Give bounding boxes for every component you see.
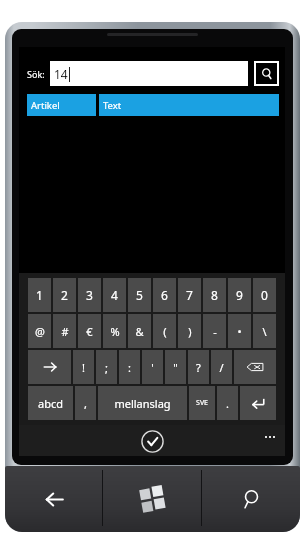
staticText: 7 bbox=[186, 287, 193, 303]
staticText: 1 bbox=[36, 287, 43, 303]
staticText: \ bbox=[262, 324, 267, 339]
staticText: abcd bbox=[38, 396, 63, 411]
button[interactable]: 3 bbox=[78, 278, 101, 312]
button[interactable]: " bbox=[165, 350, 186, 384]
button[interactable]: Backspace bbox=[234, 350, 276, 384]
staticText: ; bbox=[105, 360, 108, 375]
button[interactable]: 7 bbox=[178, 278, 201, 312]
button[interactable]: ? bbox=[188, 350, 209, 384]
staticText: 2 bbox=[61, 287, 68, 303]
staticText: & bbox=[135, 324, 144, 339]
staticText: 9 bbox=[236, 287, 243, 303]
button[interactable]: - bbox=[203, 314, 226, 348]
button[interactable]: Confirm bbox=[138, 427, 166, 455]
staticText: 6 bbox=[161, 287, 168, 303]
button[interactable]: • bbox=[228, 314, 251, 348]
staticText: Text bbox=[103, 99, 122, 112]
button[interactable]: 4 bbox=[103, 278, 126, 312]
staticText: 5 bbox=[136, 287, 143, 303]
button[interactable]: / bbox=[211, 350, 232, 384]
button[interactable]: ! bbox=[73, 350, 94, 384]
button[interactable]: ) bbox=[178, 314, 201, 348]
button[interactable]: ; bbox=[96, 350, 117, 384]
button[interactable]: ' bbox=[142, 350, 163, 384]
staticText: , bbox=[84, 396, 87, 411]
button[interactable]: abcd bbox=[28, 386, 73, 420]
staticText: Artikel bbox=[31, 99, 60, 112]
staticText: ' bbox=[151, 360, 154, 375]
button[interactable]: 8 bbox=[203, 278, 226, 312]
button[interactable]: Artikel bbox=[27, 94, 96, 116]
button[interactable]: , bbox=[75, 386, 96, 420]
button[interactable]: Text bbox=[99, 94, 279, 116]
button[interactable]: Start bbox=[103, 466, 201, 532]
staticText: ! bbox=[82, 360, 85, 375]
staticText: • bbox=[237, 324, 242, 339]
staticText: % bbox=[110, 324, 120, 339]
button[interactable]: 5 bbox=[128, 278, 151, 312]
staticText: 14 bbox=[54, 66, 68, 82]
staticText: . bbox=[226, 396, 229, 411]
button[interactable]: 14 bbox=[50, 61, 248, 86]
button[interactable]: mellanslag bbox=[98, 386, 187, 420]
button[interactable]: Search bbox=[254, 61, 279, 86]
button[interactable]: & bbox=[128, 314, 151, 348]
button[interactable]: 2 bbox=[53, 278, 76, 312]
staticText: 0 bbox=[261, 287, 268, 303]
button[interactable]: . bbox=[217, 386, 238, 420]
button[interactable]: \ bbox=[253, 314, 276, 348]
button[interactable]: SVE bbox=[189, 386, 215, 420]
button[interactable]: @ bbox=[28, 314, 51, 348]
staticText: Sök: bbox=[27, 68, 45, 80]
button[interactable]: Tab bbox=[28, 350, 71, 384]
button[interactable]: 0 bbox=[253, 278, 276, 312]
staticText: ( bbox=[163, 324, 167, 339]
button[interactable]: € bbox=[78, 314, 101, 348]
button[interactable]: 9 bbox=[228, 278, 251, 312]
staticText: 4 bbox=[111, 287, 118, 303]
staticText: - bbox=[213, 324, 217, 339]
button[interactable]: ( bbox=[153, 314, 176, 348]
button[interactable]: Enter bbox=[240, 386, 276, 420]
staticText: € bbox=[86, 324, 93, 339]
staticText: " bbox=[173, 360, 178, 375]
button[interactable]: Back bbox=[5, 466, 102, 532]
button[interactable]: : bbox=[119, 350, 140, 384]
staticText: @ bbox=[35, 324, 45, 339]
staticText: 3 bbox=[86, 287, 93, 303]
staticText: / bbox=[219, 360, 224, 375]
button[interactable]: 1 bbox=[28, 278, 51, 312]
button[interactable]: # bbox=[53, 314, 76, 348]
staticText: mellanslag bbox=[114, 396, 171, 411]
staticText: ? bbox=[196, 360, 201, 375]
staticText: SVE bbox=[196, 398, 208, 408]
staticText: ) bbox=[188, 324, 192, 339]
staticText: : bbox=[128, 360, 131, 375]
button[interactable]: % bbox=[103, 314, 126, 348]
button[interactable]: 6 bbox=[153, 278, 176, 312]
button[interactable]: Search bbox=[202, 466, 300, 532]
button[interactable]: More options bbox=[260, 427, 280, 447]
staticText: 8 bbox=[211, 287, 218, 303]
staticText: # bbox=[61, 324, 69, 339]
